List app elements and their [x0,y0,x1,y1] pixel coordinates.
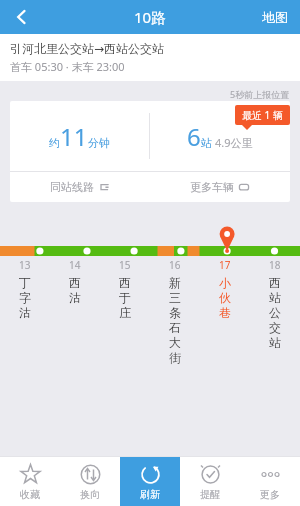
staticText: 街 [169,350,181,365]
button[interactable]: 14 [50,258,100,305]
staticText: 条 [169,305,181,320]
staticText: 地图 [262,9,288,25]
staticText: 站 [201,136,212,150]
button[interactable]: Back [0,0,44,34]
button[interactable]: 16 [150,258,200,365]
staticText: 西 [69,275,81,290]
staticText: 沽 [69,290,81,305]
staticText: 分钟 [88,136,110,150]
button[interactable]: 15 [100,258,150,320]
button[interactable]: 最近 1 辆 [235,105,290,125]
staticText: 最近 1 辆 [242,108,283,122]
staticText: 15 [119,258,131,272]
staticText: 换向 [80,488,100,501]
staticText: 14 [69,258,81,272]
button[interactable]: 刷新 [120,457,180,506]
staticText: 站 [269,335,281,350]
staticText: 17 [219,258,231,272]
button[interactable]: 13 [0,258,50,320]
staticText: 沽 [19,305,31,320]
staticText: 13 [19,258,31,272]
staticText: 6 [187,120,201,153]
button[interactable]: 同站线路 [10,172,150,202]
staticText: 更多 [260,488,280,501]
staticText: 字 [19,290,31,305]
staticText: 11 [60,120,88,153]
staticText: 巷 [219,305,231,320]
button[interactable]: 收藏 [0,457,60,506]
staticText: 西 [119,275,131,290]
button[interactable]: 17 [200,258,250,320]
button[interactable]: 6 [150,101,290,171]
button[interactable]: 引河北里公交站→西站公交站 [0,34,300,81]
button[interactable]: 地图 [250,0,300,34]
staticText: 10路 [134,7,167,27]
staticText: 站 [269,290,281,305]
staticText: 于 [119,290,131,305]
staticText: 西 [269,275,281,290]
staticText: 收藏 [20,488,40,501]
staticText: 18 [269,258,281,272]
staticText: 丁 [19,275,31,290]
staticText: 首车 05:30 · 末车 23:00 [10,59,125,74]
staticText: 公 [269,305,281,320]
button[interactable]: 换向 [60,457,120,506]
staticText: 新 [169,275,181,290]
staticText: 同站线路 [50,180,94,194]
staticText: 三 [169,290,181,305]
staticText: 刷新 [140,488,160,501]
button[interactable]: 更多 [240,457,300,506]
staticText: 更多车辆 [190,180,234,194]
staticText: 提醒 [200,488,220,501]
staticText: 16 [169,258,181,272]
staticText: 5秒前上报位置 [230,88,290,100]
staticText: 大 [169,335,181,350]
button[interactable]: 更多车辆 [150,172,290,202]
staticText: 石 [169,320,181,335]
staticText: 引河北里公交站→西站公交站 [10,41,165,56]
staticText: 4.9公里 [215,135,253,150]
staticText: 伙 [219,290,231,305]
button[interactable]: 提醒 [180,457,240,506]
staticText: 小 [219,275,231,290]
staticText: 交 [269,320,281,335]
button[interactable]: 18 [250,258,300,350]
staticText: 约 [49,136,60,150]
staticText: 庄 [119,305,131,320]
button[interactable]: 约 [10,101,149,171]
